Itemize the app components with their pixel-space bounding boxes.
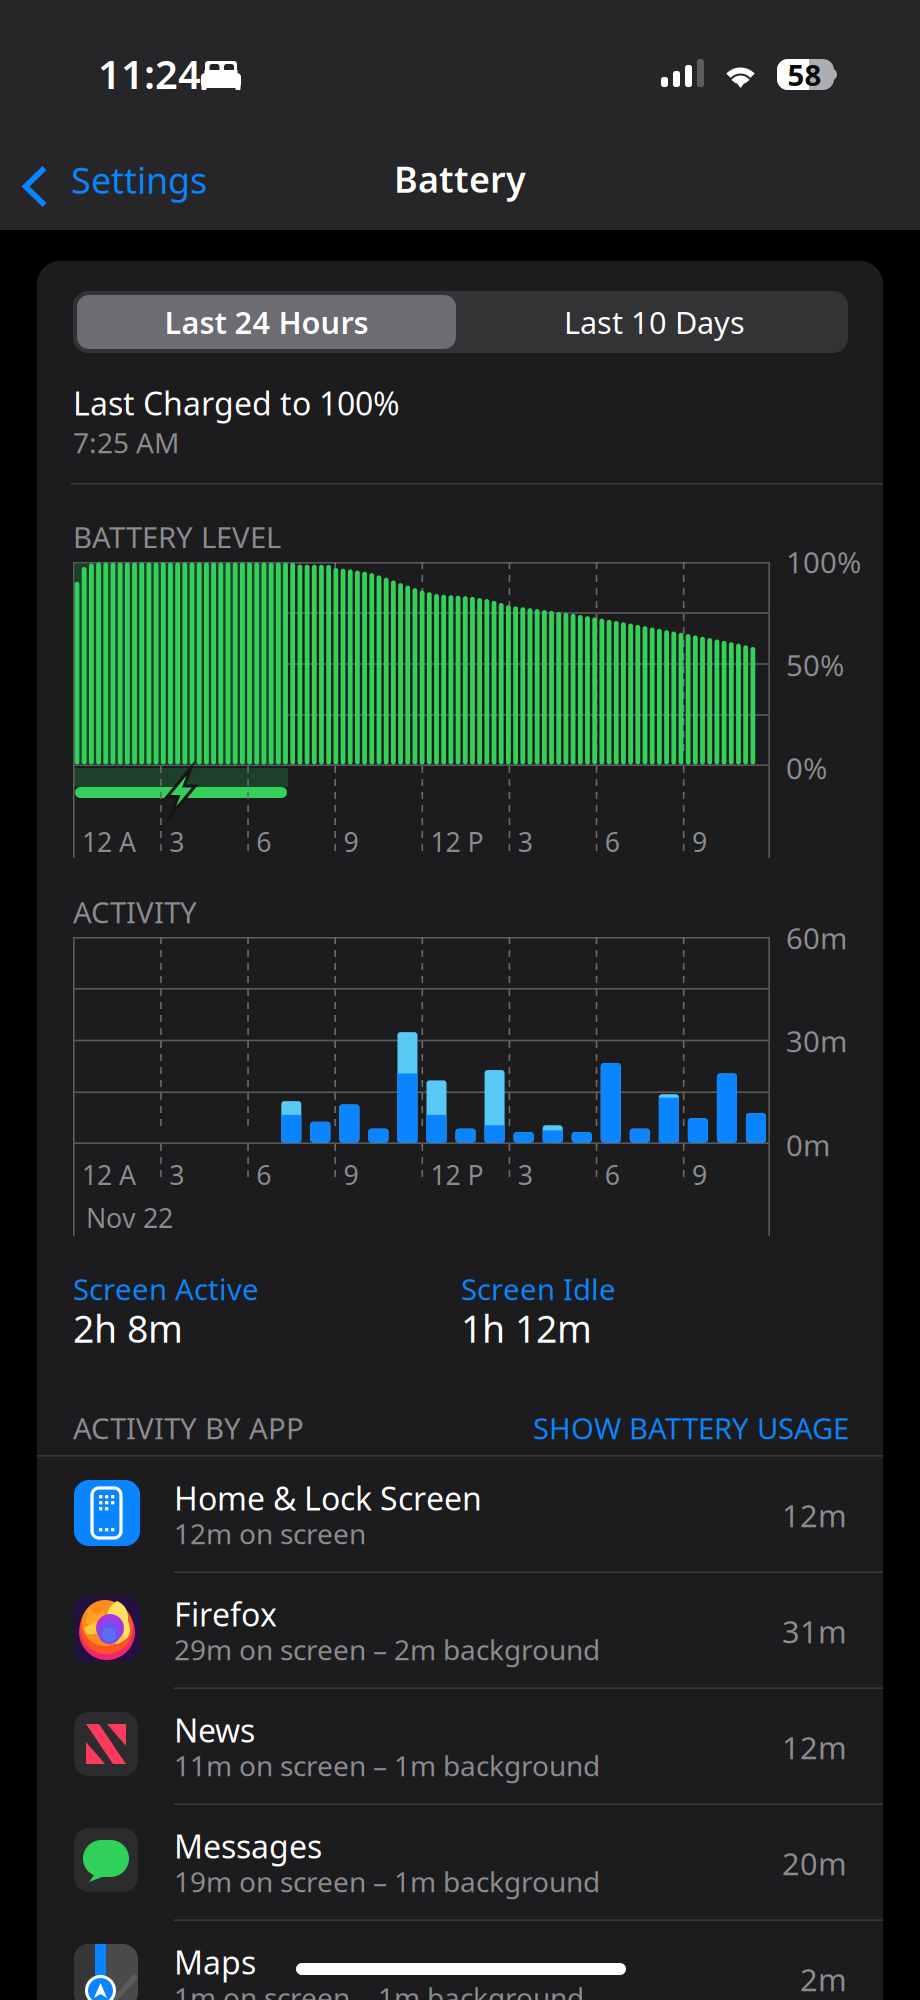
staticText: 7:25 AM bbox=[73, 424, 179, 461]
staticText: 0% bbox=[786, 748, 827, 787]
button[interactable]: Settings bbox=[10, 156, 224, 218]
staticText: 6 bbox=[256, 824, 271, 859]
staticText: 0m bbox=[786, 1125, 830, 1164]
staticText: Maps bbox=[174, 1941, 256, 1983]
button[interactable]: Last 10 Days bbox=[465, 295, 844, 349]
button[interactable]: Firefox bbox=[37, 1573, 883, 1687]
staticText: ACTIVITY BY APP bbox=[73, 1408, 304, 1447]
staticText: 3 bbox=[518, 824, 533, 859]
staticText: 2m bbox=[800, 1959, 847, 2000]
staticText: Last Charged to 100% bbox=[73, 382, 400, 424]
staticText: 9 bbox=[692, 1157, 707, 1192]
staticText: 11m on screen – 1m background bbox=[174, 1747, 600, 1784]
staticText: Last 24 Hours bbox=[164, 302, 368, 342]
staticText: Screen Idle bbox=[461, 1269, 616, 1308]
staticText: 50% bbox=[786, 645, 844, 684]
staticText: 12m bbox=[782, 1727, 847, 1768]
button[interactable]: News bbox=[37, 1689, 883, 1803]
staticText: ACTIVITY bbox=[73, 892, 197, 931]
staticText: Messages bbox=[174, 1825, 322, 1867]
staticText: 12 P bbox=[430, 824, 483, 859]
staticText: 6 bbox=[605, 824, 620, 859]
staticText: Last 10 Days bbox=[564, 302, 745, 342]
staticText: 3 bbox=[518, 1157, 533, 1192]
staticText: 29m on screen – 2m background bbox=[174, 1631, 600, 1668]
staticText: 1h 12m bbox=[461, 1304, 592, 1353]
staticText: Battery bbox=[394, 155, 526, 203]
staticText: 11:24 bbox=[98, 47, 201, 100]
staticText: 12 A bbox=[82, 1157, 136, 1192]
staticText: 30m bbox=[786, 1021, 847, 1060]
staticText: BATTERY LEVEL bbox=[73, 517, 281, 556]
staticText: 19m on screen – 1m background bbox=[174, 1863, 600, 1900]
button[interactable]: Messages bbox=[37, 1805, 883, 1919]
staticText: Nov 22 bbox=[86, 1200, 173, 1235]
staticText: 12m bbox=[782, 1495, 847, 1536]
button[interactable]: Maps bbox=[37, 1921, 883, 2000]
staticText: 9 bbox=[343, 1157, 358, 1192]
staticText: 60m bbox=[786, 918, 847, 957]
staticText: 6 bbox=[605, 1157, 620, 1192]
staticText: SHOW BATTERY USAGE bbox=[533, 1408, 849, 1447]
staticText: 3 bbox=[169, 1157, 184, 1192]
staticText: 12m on screen bbox=[174, 1515, 366, 1552]
staticText: Home & Lock Screen bbox=[174, 1477, 482, 1519]
button[interactable]: Home & Lock Screen bbox=[37, 1457, 883, 1571]
staticText: 12 A bbox=[82, 824, 136, 859]
staticText: News bbox=[174, 1709, 255, 1751]
staticText: Settings bbox=[71, 156, 207, 204]
staticText: Screen Active bbox=[73, 1269, 259, 1308]
staticText: 20m bbox=[782, 1843, 847, 1884]
staticText: 3 bbox=[169, 824, 184, 859]
staticText: 12 P bbox=[430, 1157, 483, 1192]
staticText: Firefox bbox=[174, 1593, 277, 1635]
staticText: 100% bbox=[786, 542, 861, 581]
staticText: 31m bbox=[782, 1611, 847, 1652]
staticText: 9 bbox=[343, 824, 358, 859]
staticText: 6 bbox=[256, 1157, 271, 1192]
staticText: 2h 8m bbox=[73, 1304, 183, 1353]
staticText: 1m on screen – 1m background bbox=[174, 1979, 584, 2000]
staticText: 9 bbox=[692, 824, 707, 859]
staticText: 58 bbox=[787, 55, 821, 94]
button[interactable]: Last 24 Hours bbox=[77, 295, 456, 349]
